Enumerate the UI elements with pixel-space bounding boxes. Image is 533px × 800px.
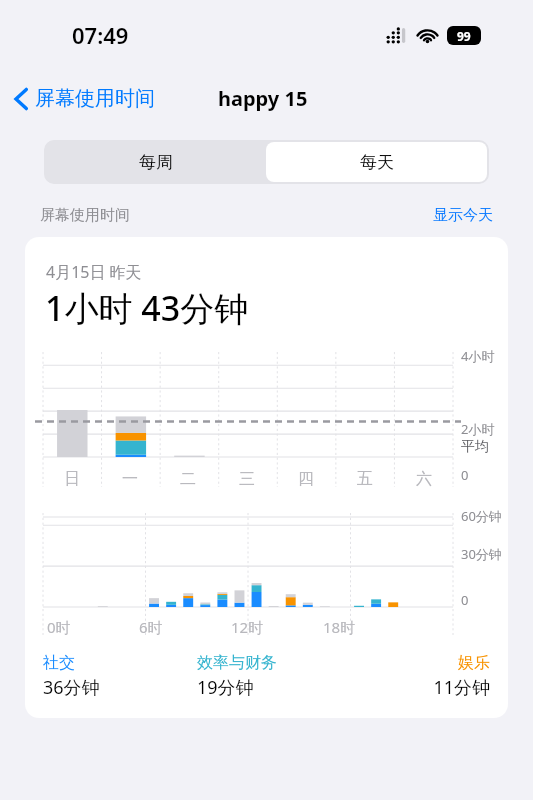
staticText: 0时	[47, 617, 71, 637]
button[interactable]: 娱乐	[374, 653, 490, 700]
staticText: 1小时 43分钟	[45, 285, 249, 331]
staticText: 19分钟	[197, 675, 374, 700]
staticText: 平均	[461, 438, 489, 456]
button[interactable]: 效率与财务	[197, 653, 374, 700]
staticText: 4小时	[461, 347, 495, 365]
button[interactable]: Back	[10, 82, 159, 115]
button[interactable]: 每周	[46, 142, 266, 182]
staticText: 0	[461, 591, 469, 609]
staticText: 二	[180, 469, 196, 489]
staticText: 0	[461, 466, 469, 484]
staticText: 07:49	[72, 20, 129, 50]
button[interactable]: 社交	[43, 653, 197, 700]
staticText: 4月15日 昨天	[46, 261, 142, 283]
staticText: 三	[239, 469, 255, 489]
staticText: 社交	[43, 653, 197, 673]
staticText: 6时	[139, 617, 163, 637]
staticText: 每天	[360, 152, 394, 173]
staticText: happy 15	[218, 85, 308, 112]
staticText: 18时	[323, 617, 356, 637]
button[interactable]: 显示今天	[433, 206, 493, 225]
staticText: 60分钟	[461, 507, 502, 525]
other: Back	[14, 87, 28, 111]
staticText: 36分钟	[43, 675, 197, 700]
staticText: 30分钟	[461, 545, 502, 563]
staticText: 六	[416, 469, 432, 489]
staticText: 显示今天	[433, 206, 493, 225]
staticText: 99	[457, 28, 471, 44]
staticText: 四	[298, 469, 314, 489]
staticText: 12时	[231, 617, 264, 637]
staticText: 每周	[139, 152, 173, 173]
staticText: 屏幕使用时间	[35, 86, 155, 111]
staticText: 娱乐	[374, 653, 490, 673]
button[interactable]: 每天	[266, 142, 487, 182]
staticText: 11分钟	[374, 675, 490, 700]
staticText: 日	[64, 469, 80, 489]
staticText: 五	[357, 469, 373, 489]
staticText: 效率与财务	[197, 653, 374, 673]
staticText: 一	[122, 469, 138, 489]
staticText: 屏幕使用时间	[40, 206, 130, 225]
staticText: 2小时	[461, 420, 495, 438]
